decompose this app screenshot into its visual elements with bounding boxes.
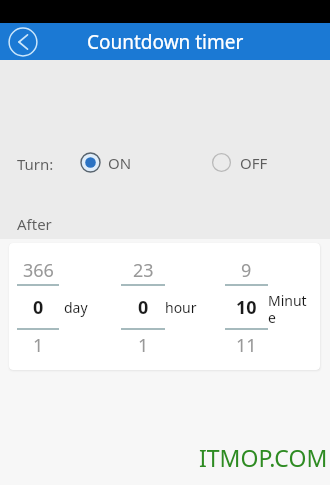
button[interactable]: ON	[80, 152, 132, 173]
button[interactable]: OFF	[211, 152, 268, 173]
staticText: ON	[108, 153, 132, 173]
staticText: Turn:	[17, 154, 54, 170]
button[interactable]: 23	[121, 243, 217, 370]
button[interactable]: 366	[17, 243, 115, 370]
staticText: 1	[138, 333, 149, 355]
staticText: hour	[165, 298, 197, 317]
staticText: 0	[33, 295, 44, 317]
staticText: day	[64, 298, 88, 317]
staticText: 366	[23, 258, 54, 280]
staticText: ITMOP.COM	[199, 442, 328, 473]
staticText: Minute	[268, 291, 309, 327]
staticText: OFF	[240, 153, 268, 173]
staticText: 1	[33, 333, 44, 355]
staticText: 9	[241, 258, 252, 280]
button[interactable]: Back	[9, 28, 37, 56]
staticText: 10	[236, 295, 257, 317]
staticText: Countdown timer	[87, 29, 244, 55]
button[interactable]: 9	[225, 243, 320, 370]
staticText: 11	[236, 333, 257, 355]
staticText: 0	[138, 295, 149, 317]
staticText: 23	[133, 258, 154, 280]
staticText: After	[17, 214, 52, 234]
